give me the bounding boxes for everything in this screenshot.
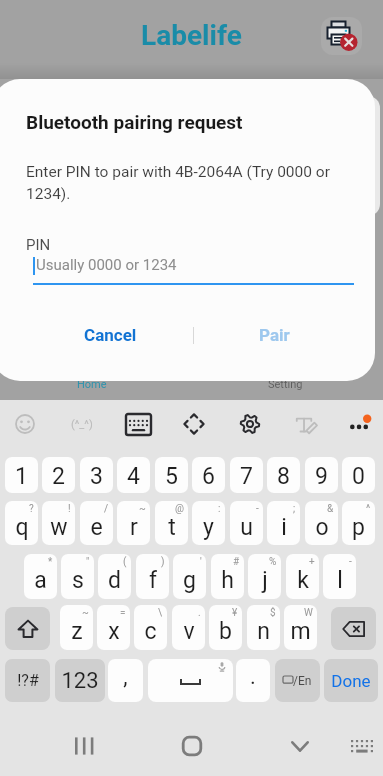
button[interactable]: Hide keyboard xyxy=(278,724,322,768)
staticText: 7 xyxy=(240,463,253,490)
staticText: ^ xyxy=(366,503,371,515)
staticText: # xyxy=(233,556,240,568)
staticText: 2 xyxy=(52,463,65,490)
staticText: Done xyxy=(331,671,371,691)
staticText: ' xyxy=(200,556,202,568)
button[interactable]: a xyxy=(24,554,57,599)
button[interactable]: Pair xyxy=(227,318,321,352)
staticText: * xyxy=(48,556,53,568)
button[interactable]: z xyxy=(60,605,93,650)
staticText: h xyxy=(221,567,234,594)
button[interactable]: Keyboard settings xyxy=(232,406,268,442)
button[interactable]: m xyxy=(284,605,317,650)
staticText: x xyxy=(108,618,120,645)
button[interactable]: Resize keyboard xyxy=(176,406,212,442)
button[interactable]: , xyxy=(108,659,143,702)
button[interactable]: p xyxy=(342,501,375,545)
button[interactable]: c xyxy=(134,605,167,650)
button[interactable]: u xyxy=(230,501,263,545)
button[interactable]: Done xyxy=(324,659,378,702)
button[interactable]: Emoji xyxy=(7,406,43,442)
button[interactable]: Language xyxy=(275,659,320,702)
button[interactable]: 9 xyxy=(305,457,338,493)
button[interactable]: 3 xyxy=(80,457,113,493)
button[interactable]: Keyboard layout xyxy=(120,406,156,442)
button[interactable]: More options xyxy=(342,406,378,442)
button[interactable]: f xyxy=(136,554,169,599)
button[interactable]: t xyxy=(155,501,188,545)
button[interactable]: Space xyxy=(148,659,233,702)
button[interactable]: Cancel xyxy=(63,318,157,352)
button[interactable]: 6 xyxy=(192,457,225,493)
staticText: + xyxy=(309,556,315,568)
staticText: i xyxy=(281,514,287,541)
staticText: - xyxy=(349,556,352,568)
staticText: Bluetooth pairing request xyxy=(26,111,243,133)
button[interactable]: Home xyxy=(170,724,214,768)
button[interactable]: s xyxy=(61,554,94,599)
staticText: W xyxy=(304,607,313,619)
staticText: - xyxy=(256,503,259,515)
button[interactable]: h xyxy=(211,554,244,599)
button[interactable]: i xyxy=(267,501,300,545)
button[interactable]: w xyxy=(42,501,75,545)
button[interactable]: Labelife xyxy=(141,19,242,52)
button[interactable]: x xyxy=(97,605,130,650)
staticText: 5 xyxy=(165,463,178,490)
staticText: t xyxy=(168,514,176,541)
staticText: ? xyxy=(29,503,34,515)
staticText: . xyxy=(198,607,201,619)
button[interactable]: 2 xyxy=(42,457,75,493)
staticText: z xyxy=(71,618,83,645)
staticText: " xyxy=(86,556,90,568)
button[interactable]: Kaomoji xyxy=(60,414,104,434)
button[interactable]: b xyxy=(209,605,242,650)
button[interactable]: y xyxy=(192,501,225,545)
staticText: Pair xyxy=(259,325,290,345)
staticText: 9 xyxy=(315,463,328,490)
button[interactable]: q xyxy=(5,501,38,545)
button[interactable]: Switch keyboard xyxy=(340,724,383,768)
staticText: b xyxy=(219,618,232,645)
button[interactable]: 123 xyxy=(55,659,105,702)
staticText: u xyxy=(240,514,253,541)
button[interactable]: r xyxy=(117,501,150,545)
button[interactable]: . xyxy=(236,659,270,702)
button[interactable]: k xyxy=(286,554,319,599)
button[interactable]: Shift xyxy=(5,607,50,650)
button[interactable]: Recent apps xyxy=(62,724,106,768)
button[interactable]: d xyxy=(98,554,131,599)
button[interactable]: Setting xyxy=(268,378,303,391)
staticText: ; xyxy=(293,503,296,515)
staticText: l xyxy=(337,567,343,594)
staticText: @ xyxy=(175,503,184,515)
button[interactable]: Handwriting xyxy=(288,406,324,442)
staticText: \ xyxy=(158,607,163,619)
staticText: ) xyxy=(161,556,165,568)
staticText: Usually 0000 or 1234 xyxy=(36,256,177,274)
button[interactable]: o xyxy=(305,501,338,545)
button[interactable]: g xyxy=(173,554,206,599)
button[interactable]: n xyxy=(247,605,280,650)
button[interactable]: 0 xyxy=(342,457,375,493)
staticText: ~ xyxy=(82,607,89,619)
button[interactable]: j xyxy=(248,554,281,599)
button[interactable]: l xyxy=(323,554,356,599)
staticText: Home xyxy=(77,378,107,391)
button[interactable]: v xyxy=(172,605,205,650)
staticText: Labelife xyxy=(141,19,242,52)
button[interactable]: Backspace xyxy=(331,607,376,650)
staticText: r xyxy=(130,514,138,541)
button[interactable]: 7 xyxy=(230,457,263,493)
button[interactable]: 5 xyxy=(155,457,188,493)
button[interactable]: !?# xyxy=(5,659,50,702)
button[interactable]: 8 xyxy=(267,457,300,493)
staticText: ¥ xyxy=(232,607,238,619)
staticText: ! xyxy=(68,503,71,515)
button[interactable]: Printer disconnected xyxy=(321,17,362,55)
button[interactable]: 4 xyxy=(117,457,150,493)
button[interactable]: e xyxy=(80,501,113,545)
button[interactable]: 1 xyxy=(5,457,38,493)
button[interactable]: Home xyxy=(77,378,107,391)
staticText: q xyxy=(15,514,29,541)
